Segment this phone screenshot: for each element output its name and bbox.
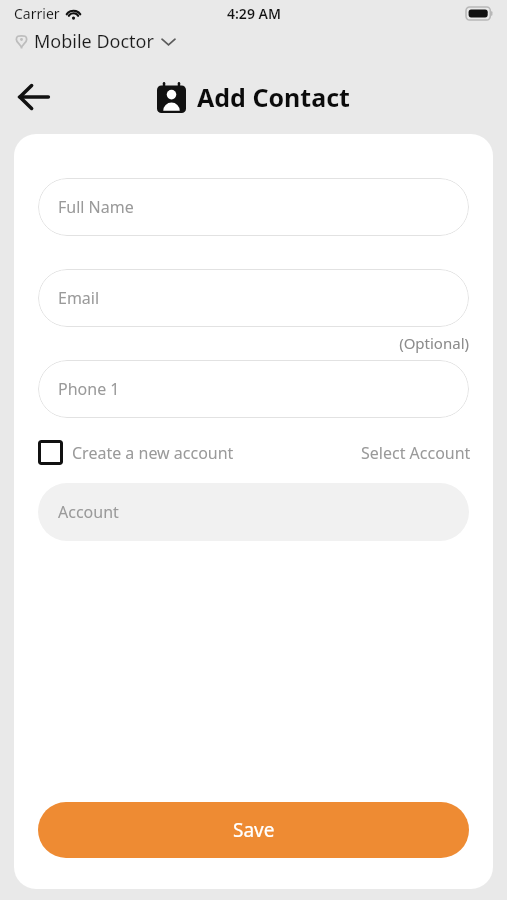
button[interactable]: Account: [38, 483, 469, 541]
staticText: Mobile Doctor: [34, 29, 154, 54]
button[interactable]: Save: [38, 802, 469, 858]
staticText: Phone 1: [58, 378, 120, 400]
button[interactable]: Create a new account: [38, 440, 234, 465]
staticText: (Optional): [38, 333, 469, 353]
button[interactable]: Full Name: [38, 178, 469, 236]
staticText: Select Account: [361, 442, 471, 464]
staticText: Full Name: [58, 196, 134, 218]
button[interactable]: Phone 1: [38, 360, 469, 418]
button[interactable]: Mobile Doctor: [0, 27, 507, 56]
staticText: Carrier: [14, 4, 60, 23]
staticText: Create a new account: [72, 442, 234, 464]
staticText: 4:29 AM: [227, 4, 281, 23]
staticText: Add Contact: [197, 80, 350, 114]
staticText: Email: [58, 287, 100, 309]
button[interactable]: Email: [38, 269, 469, 327]
staticText: Save: [233, 817, 275, 843]
staticText: Account: [58, 501, 119, 523]
button[interactable]: Select Account: [359, 442, 469, 464]
button[interactable]: Back: [10, 75, 56, 119]
